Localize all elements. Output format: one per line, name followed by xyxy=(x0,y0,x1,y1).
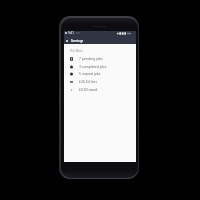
button[interactable]: 3 completed jobs xyxy=(64,62,136,70)
staticText: Earnings xyxy=(71,39,84,43)
staticText: 3 completed jobs xyxy=(79,64,107,69)
staticText: 5 unpaid jobs xyxy=(79,71,101,76)
button[interactable]: £0.00 owed xyxy=(64,85,136,93)
button[interactable]: £36.54 fees xyxy=(64,77,136,85)
staticText: 7 pending jobs xyxy=(79,56,103,61)
button[interactable]: Menu xyxy=(65,39,69,43)
button[interactable]: 7 pending jobs xyxy=(64,54,136,62)
staticText: £0.00 owed xyxy=(79,87,98,92)
button[interactable]: 5 unpaid jobs xyxy=(64,69,136,77)
staticText: This Week xyxy=(70,49,83,53)
staticText: £36.54 fees xyxy=(79,79,98,84)
staticText: 9:41 xyxy=(68,31,75,35)
